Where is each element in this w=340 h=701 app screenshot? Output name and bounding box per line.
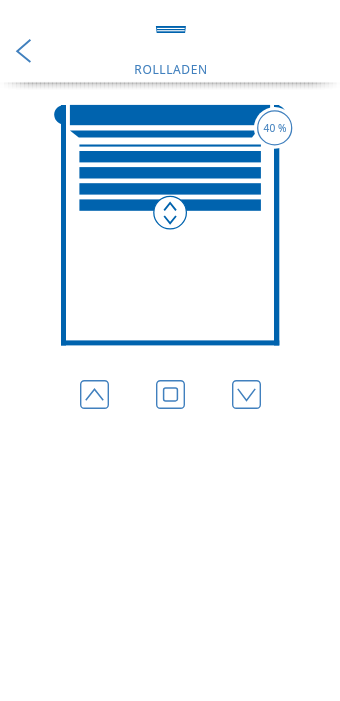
button[interactable]: Down [232, 380, 261, 409]
button[interactable]: Up [80, 380, 109, 409]
button[interactable]: Stop [156, 380, 185, 409]
button[interactable]: Back [6, 30, 46, 70]
staticText: ROLLLADEN [134, 61, 208, 77]
staticText: 40 % [257, 121, 293, 135]
